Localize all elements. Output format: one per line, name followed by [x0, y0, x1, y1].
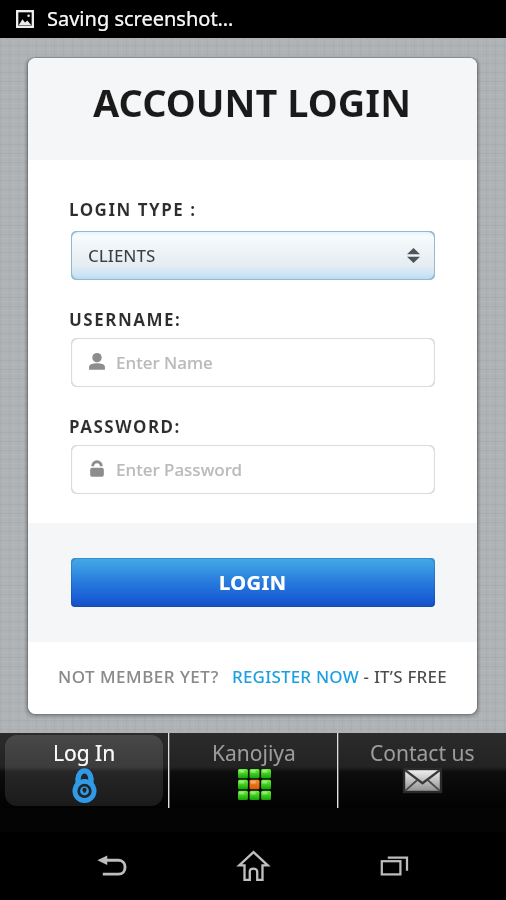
staticText: Enter Name — [116, 351, 213, 374]
staticText: REGISTER NOW — [232, 665, 359, 688]
button[interactable]: Log In — [0, 733, 168, 808]
staticText: Enter Password — [116, 458, 243, 481]
button[interactable]: LOGIN — [71, 558, 435, 607]
staticText: Log In — [53, 739, 116, 768]
staticText: LOGIN TYPE : — [69, 198, 197, 221]
button[interactable]: CLIENTS — [71, 231, 435, 280]
button[interactable]: REGISTER NOW — [232, 665, 359, 688]
staticText: Contact us — [370, 739, 475, 768]
staticText: PASSWORD: — [69, 415, 181, 438]
button[interactable]: Contact us — [339, 733, 506, 808]
staticText: Kanojiya — [212, 739, 296, 768]
button[interactable]: Back — [42, 832, 183, 900]
staticText: CLIENTS — [88, 244, 156, 267]
button[interactable]: Kanojiya — [170, 733, 337, 808]
button[interactable]: Home — [183, 832, 324, 900]
staticText: Saving screenshot… — [47, 5, 234, 32]
button[interactable]: Enter Name — [71, 338, 435, 387]
staticText: - IT’S FREE — [359, 665, 447, 688]
button[interactable]: Enter Password — [71, 445, 435, 494]
staticText: NOT MEMBER YET? — [58, 665, 219, 688]
staticText: ACCOUNT LOGIN — [93, 76, 412, 128]
staticText: USERNAME: — [69, 308, 182, 331]
button[interactable]: Recent apps — [324, 832, 465, 900]
staticText: LOGIN — [219, 569, 287, 596]
